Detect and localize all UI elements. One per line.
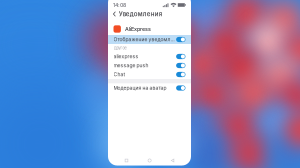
staticText: 14:08 xyxy=(113,2,126,8)
staticText: Модерация на аватар xyxy=(113,85,166,91)
button[interactable]: Chat xyxy=(108,70,191,79)
button[interactable]: Назад xyxy=(168,156,177,165)
staticText: Отображение уведомлений xyxy=(113,36,176,42)
staticText: aliexpress xyxy=(113,53,138,59)
staticText: Другое xyxy=(113,46,126,50)
button[interactable]: Переключатель xyxy=(176,85,185,91)
button[interactable]: Модерация на аватар xyxy=(108,83,191,92)
button[interactable]: Отображение уведомлений xyxy=(108,35,191,44)
staticText: message push xyxy=(113,62,148,68)
button[interactable]: Недавние приложения xyxy=(122,156,131,165)
button[interactable]: Назад xyxy=(108,10,167,18)
button[interactable]: Переключатель xyxy=(176,54,185,59)
staticText: Chat xyxy=(113,71,125,77)
button[interactable]: Домой xyxy=(145,156,154,165)
button[interactable]: aliexpress xyxy=(108,52,191,61)
staticText: Уведомления xyxy=(119,10,162,18)
button[interactable]: message push xyxy=(108,61,191,70)
staticText: AliExpress xyxy=(125,26,151,32)
button[interactable]: Переключатель xyxy=(176,37,185,42)
button[interactable]: Переключатель xyxy=(176,63,185,68)
button[interactable]: Переключатель xyxy=(176,72,185,77)
